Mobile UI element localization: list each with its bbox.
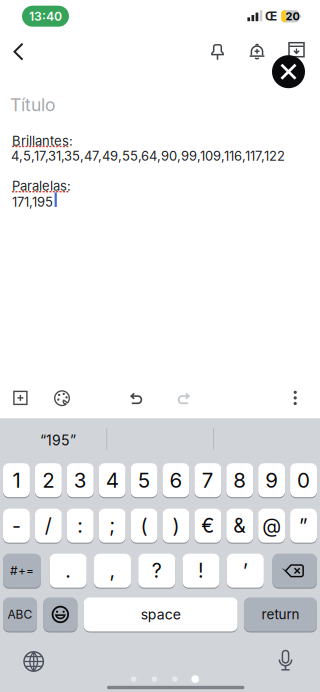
button[interactable]: 7 bbox=[194, 463, 221, 498]
staticText: Título bbox=[10, 94, 55, 115]
button[interactable]: space bbox=[84, 597, 238, 632]
button[interactable]: Theme bbox=[54, 390, 70, 406]
button[interactable]: Delete bbox=[272, 553, 317, 588]
staticText: ’ bbox=[243, 559, 248, 582]
staticText: 171,195 bbox=[12, 194, 53, 210]
button[interactable]: ; bbox=[99, 508, 126, 543]
button[interactable]: ) bbox=[162, 508, 189, 543]
button[interactable]: 6 bbox=[162, 463, 189, 498]
button[interactable]: Next keyboard bbox=[23, 651, 44, 672]
button[interactable]: ” bbox=[290, 508, 317, 543]
staticText: 5 bbox=[138, 468, 150, 493]
button[interactable]: Undo bbox=[129, 393, 143, 405]
staticText: 20 bbox=[285, 10, 299, 23]
button[interactable]: 5 bbox=[131, 463, 157, 498]
staticText: ABC bbox=[8, 607, 33, 622]
button[interactable]: : bbox=[67, 508, 94, 543]
staticText: . bbox=[65, 559, 71, 582]
staticText: 1 bbox=[12, 468, 20, 493]
staticText: Œ bbox=[265, 9, 277, 23]
staticText: 0 bbox=[297, 468, 310, 493]
staticText: return bbox=[261, 606, 299, 623]
button[interactable]: ? bbox=[138, 553, 175, 588]
button[interactable]: Dictate bbox=[278, 649, 293, 671]
staticText: € bbox=[201, 514, 214, 537]
staticText: 4 bbox=[106, 468, 119, 493]
staticText: space bbox=[141, 606, 181, 623]
button[interactable]: - bbox=[3, 508, 30, 543]
staticText: ( bbox=[140, 514, 147, 537]
staticText: Paralelas: bbox=[12, 178, 71, 194]
button[interactable]: ! bbox=[182, 553, 219, 588]
button[interactable]: Emoji bbox=[43, 597, 77, 632]
button[interactable]: Back bbox=[7, 39, 31, 64]
staticText: 8 bbox=[233, 468, 246, 493]
button[interactable]: ( bbox=[131, 508, 157, 543]
button[interactable]: @ bbox=[258, 508, 285, 543]
button[interactable]: More bbox=[294, 391, 298, 406]
staticText: #+= bbox=[10, 563, 34, 578]
staticText: - bbox=[12, 514, 21, 537]
staticText: Brillantes: bbox=[12, 133, 73, 149]
staticText: ! bbox=[198, 559, 204, 582]
button[interactable]: . bbox=[50, 553, 87, 588]
staticText: “195” bbox=[40, 432, 76, 449]
staticText: ) bbox=[172, 514, 179, 537]
staticText: ” bbox=[299, 514, 308, 537]
button[interactable]: € bbox=[194, 508, 221, 543]
button[interactable]: 8 bbox=[226, 463, 253, 498]
button[interactable]: #+= bbox=[3, 553, 41, 588]
button[interactable]: “195” bbox=[0, 418, 106, 463]
button[interactable]: & bbox=[226, 508, 253, 543]
button[interactable]: 2 bbox=[35, 463, 62, 498]
staticText: 2 bbox=[42, 468, 54, 493]
staticText: / bbox=[45, 514, 52, 537]
staticText: ? bbox=[152, 559, 162, 582]
button[interactable]: 0 bbox=[290, 463, 317, 498]
staticText: 4,5,17,31,35,47,49,55,64,90,99,109,116,1… bbox=[11, 148, 285, 164]
button[interactable]: 9 bbox=[258, 463, 285, 498]
staticText: 6 bbox=[169, 468, 182, 493]
button[interactable]: Archive bbox=[288, 42, 305, 58]
button[interactable]: Close bbox=[272, 55, 305, 88]
button[interactable]: ABC bbox=[3, 597, 37, 632]
button[interactable]: Redo bbox=[177, 393, 191, 405]
button[interactable]: 4 bbox=[99, 463, 126, 498]
button[interactable]: / bbox=[35, 508, 62, 543]
button[interactable]: 3 bbox=[67, 463, 94, 498]
staticText: @ bbox=[262, 514, 281, 537]
staticText: 13:40 bbox=[29, 9, 62, 24]
button[interactable]: , bbox=[94, 553, 131, 588]
staticText: & bbox=[233, 514, 246, 537]
staticText: 7 bbox=[202, 468, 214, 493]
button[interactable]: ’ bbox=[227, 553, 264, 588]
staticText: : bbox=[77, 514, 83, 537]
button[interactable]: return bbox=[244, 597, 317, 632]
button[interactable]: 1 bbox=[3, 463, 30, 498]
button[interactable]: Pin bbox=[205, 42, 229, 62]
staticText: ; bbox=[109, 514, 115, 537]
staticText: 3 bbox=[74, 468, 87, 493]
staticText: , bbox=[109, 559, 115, 582]
button[interactable]: Reminder bbox=[245, 44, 269, 62]
staticText: 9 bbox=[265, 468, 278, 493]
button[interactable]: Add attachment bbox=[13, 391, 28, 406]
